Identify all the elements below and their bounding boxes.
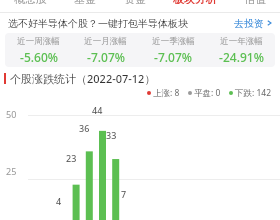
staticText: -5.60% bbox=[20, 49, 58, 65]
staticText: -24.91% bbox=[219, 49, 264, 65]
staticText: -7.07% bbox=[87, 49, 125, 65]
button[interactable]: 概念股 bbox=[0, 0, 60, 4]
staticText: 下跌: 142 bbox=[235, 87, 272, 99]
staticText: 资金 bbox=[124, 0, 146, 4]
staticText: 23 bbox=[66, 152, 77, 164]
button[interactable]: 资金 bbox=[110, 0, 160, 4]
staticText: 估值 bbox=[244, 0, 266, 4]
staticText: 33 bbox=[106, 129, 117, 141]
staticText: 44 bbox=[92, 104, 103, 116]
staticText: 个股涨跌统计（2022-07-12） bbox=[10, 71, 156, 86]
staticText: 7 bbox=[121, 188, 127, 200]
button[interactable]: 板块分析 bbox=[160, 0, 230, 4]
staticText: 36 bbox=[79, 122, 90, 134]
staticText: 上涨: 8 bbox=[153, 87, 180, 99]
staticText: 平盘: 0 bbox=[194, 87, 221, 99]
staticText: 50 bbox=[6, 108, 17, 120]
staticText: 板块分析 bbox=[173, 0, 217, 4]
staticText: 去投资 bbox=[234, 17, 264, 30]
staticText: 选不好半导体个股？一键打包半导体板块 bbox=[8, 17, 188, 30]
button[interactable]: 基金 bbox=[60, 0, 110, 4]
button[interactable]: 选不好半导体个股？一键打包半导体板块 bbox=[0, 13, 280, 33]
staticText: 近一周涨幅 bbox=[17, 36, 60, 47]
staticText: 25 bbox=[6, 165, 17, 177]
staticText: -7.07% bbox=[154, 49, 192, 65]
staticText: 概念股 bbox=[14, 0, 47, 4]
staticText: 基金 bbox=[74, 0, 96, 4]
staticText: 近一季涨幅 bbox=[152, 36, 195, 47]
staticText: 4 bbox=[56, 195, 62, 207]
staticText: 近一月涨幅 bbox=[84, 36, 127, 47]
staticText: 近一年涨幅 bbox=[220, 36, 263, 47]
button[interactable]: 估值 bbox=[230, 0, 280, 4]
